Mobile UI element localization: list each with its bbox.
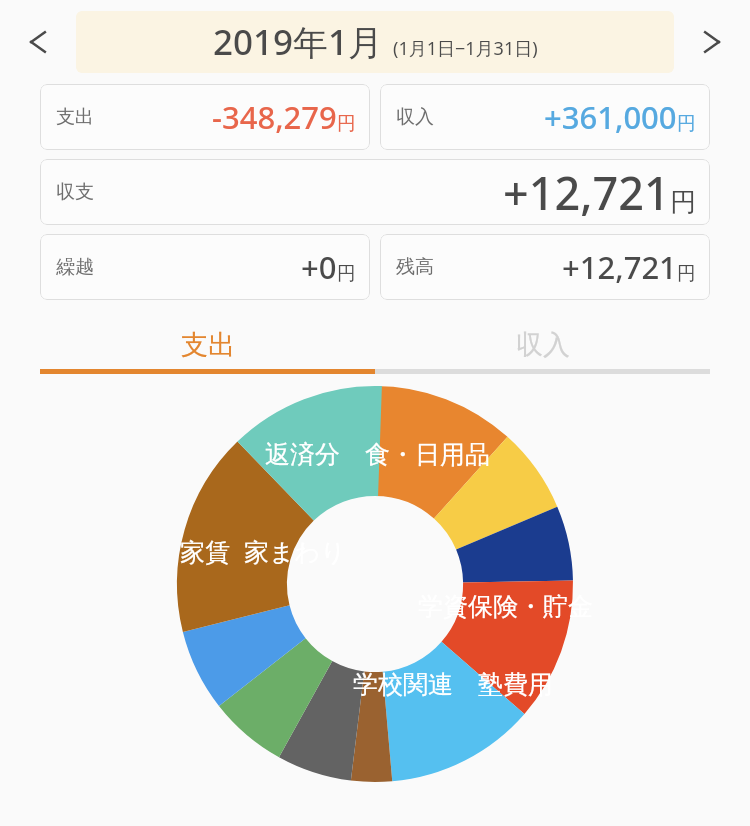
button[interactable]: 収支 <box>40 159 710 225</box>
button[interactable]: Previous month <box>0 0 76 84</box>
button[interactable]: 繰越 <box>40 234 370 300</box>
staticText: -348,279 <box>212 96 337 138</box>
staticText: 家賃 <box>180 537 230 568</box>
staticText: (1月1日−1月31日) <box>393 36 538 61</box>
staticText: 円 <box>677 112 696 135</box>
button[interactable]: 2019年1月 <box>76 11 674 73</box>
staticText: 支出 <box>181 328 235 362</box>
button[interactable]: 収入 <box>380 84 710 150</box>
staticText: +12,721 <box>562 246 677 288</box>
staticText: +0 <box>301 246 337 288</box>
button[interactable]: Next month <box>674 0 750 84</box>
staticText: 残高 <box>396 255 434 279</box>
button[interactable]: 残高 <box>380 234 710 300</box>
staticText: 食・日用品 <box>365 439 490 470</box>
staticText: 収支 <box>56 180 94 204</box>
staticText: +361,000 <box>544 96 677 138</box>
staticText: 収入 <box>516 328 570 362</box>
button[interactable]: 支出 <box>40 84 370 150</box>
staticText: 円 <box>670 186 696 219</box>
staticText: 繰越 <box>56 255 94 279</box>
staticText: 学校関連 <box>353 669 453 700</box>
staticText: 円 <box>337 112 356 135</box>
staticText: 返済分 <box>265 439 340 470</box>
staticText: 塾費用 <box>478 669 553 700</box>
button[interactable]: 収入 <box>375 321 710 369</box>
staticText: +12,721 <box>503 162 670 223</box>
staticText: 円 <box>337 262 356 285</box>
staticText: 2019年1月 <box>213 18 384 66</box>
button[interactable]: 支出 <box>40 321 375 369</box>
staticText: 家まわり <box>244 537 346 568</box>
staticText: 学資保険・貯金 <box>418 591 593 622</box>
staticText: 円 <box>677 262 696 285</box>
staticText: 収入 <box>396 105 434 129</box>
staticText: 支出 <box>56 105 94 129</box>
